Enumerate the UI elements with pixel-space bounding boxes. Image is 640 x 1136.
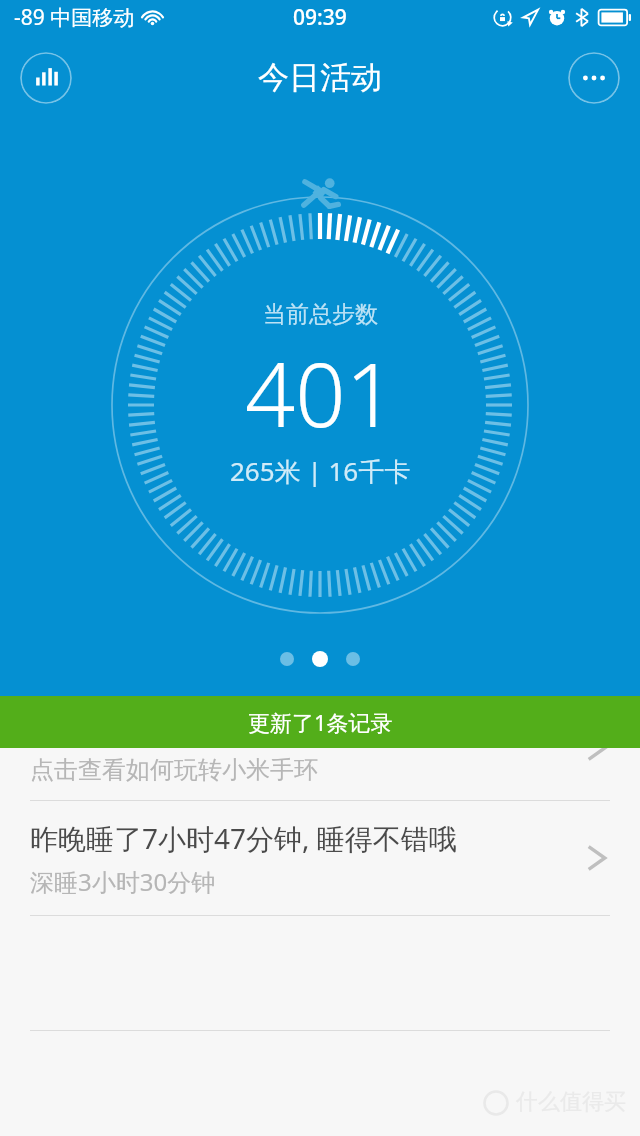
staticText: 当前总步数 (263, 300, 378, 329)
button[interactable]: More options (568, 52, 620, 104)
staticText: 深睡3小时30分钟 (30, 865, 216, 898)
staticText: 昨晚睡了7小时47分钟, 睡得不错哦 (30, 819, 457, 857)
other: Open (584, 837, 610, 879)
other: Open (584, 727, 610, 769)
button[interactable] (346, 652, 360, 666)
button[interactable] (312, 651, 328, 667)
staticText: 欢迎使用小米运动 (30, 712, 254, 747)
staticText: 更新了1条记录 (248, 707, 393, 737)
staticText: 今日活动 (258, 58, 382, 97)
button[interactable]: 昨晚睡了7小时47分钟, 睡得不错哦 (0, 801, 640, 915)
staticText: 401 (245, 333, 396, 453)
button[interactable]: 欢迎使用小米运动 (0, 696, 640, 800)
staticText: 265米 | 16千卡 (230, 453, 411, 489)
staticText: 09:39 (293, 3, 347, 32)
staticText: -89 中国移动 (14, 3, 135, 32)
button[interactable]: Statistics (20, 52, 72, 104)
staticText: 什么值得买 (516, 1088, 626, 1116)
staticText: 点击查看如何玩转小米手环 (30, 755, 318, 785)
button[interactable]: 更新了1条记录 (0, 696, 640, 748)
button[interactable] (280, 652, 294, 666)
